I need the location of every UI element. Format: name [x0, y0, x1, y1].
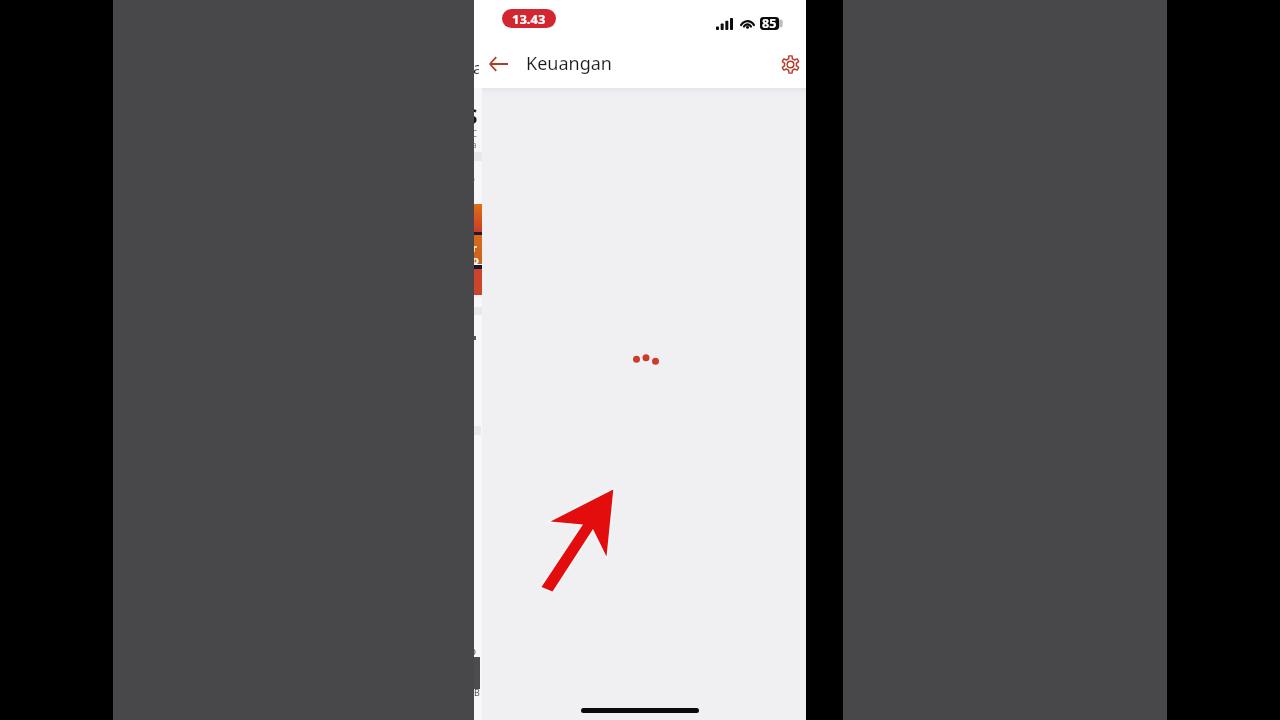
staticText: 13.43: [512, 10, 546, 28]
staticText: Pe: [474, 173, 476, 203]
staticText: r: [474, 240, 477, 255]
staticText: B: [474, 686, 480, 698]
button[interactable]: 13.43: [502, 9, 556, 28]
staticText: Keuangan: [526, 51, 612, 76]
staticText: 85: [762, 15, 777, 32]
button[interactable]: Settings: [774, 48, 806, 80]
button[interactable]: Balance card: [474, 204, 482, 232]
staticText: Ca: [474, 128, 480, 150]
staticText: oi: [474, 644, 478, 672]
staticText: o: [474, 252, 479, 267]
staticText: a: [474, 56, 478, 79]
button[interactable]: Promo card: [474, 235, 482, 264]
button[interactable]: Back: [482, 48, 514, 80]
